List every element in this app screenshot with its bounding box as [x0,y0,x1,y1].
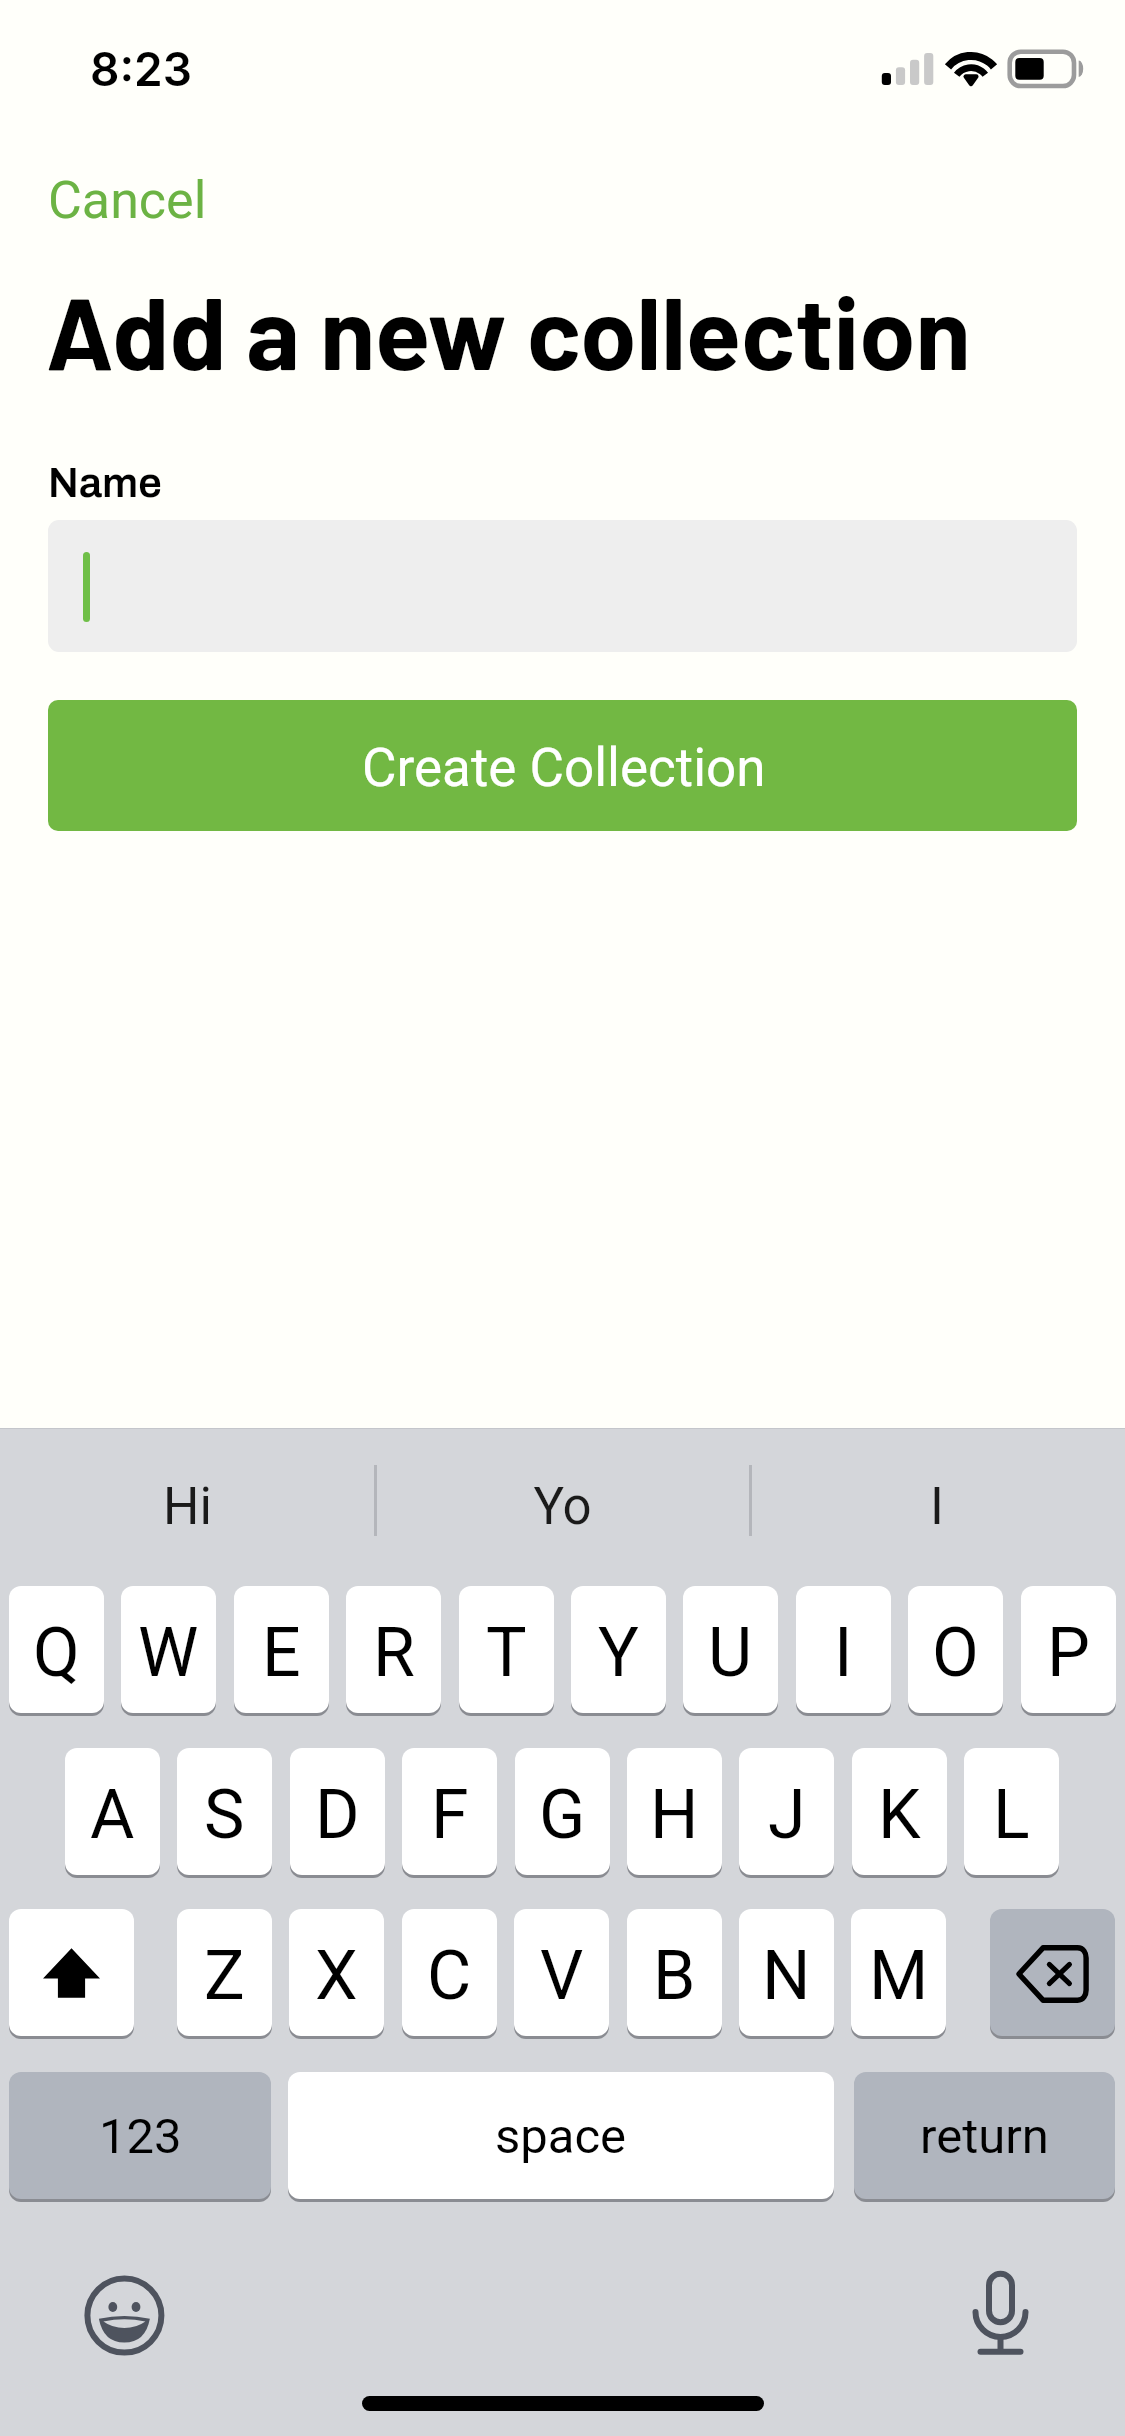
button[interactable]: J [739,1748,834,1875]
staticText: P [1047,1613,1090,1693]
button[interactable]: L [964,1748,1059,1875]
button[interactable]: space [288,2072,834,2199]
button[interactable]: G [515,1748,610,1875]
button[interactable]: Q [9,1586,104,1713]
staticText: I [930,1477,944,1537]
staticText: A [90,1775,135,1855]
staticText: L [993,1775,1030,1855]
staticText: J [768,1775,806,1855]
staticText: R [373,1613,415,1693]
button[interactable]: M [851,1909,946,2036]
staticText: Y [598,1613,639,1693]
button[interactable]: V [514,1909,609,2036]
button[interactable]: R [346,1586,441,1713]
button[interactable]: Shift [9,1909,134,2036]
button[interactable]: S [177,1748,272,1875]
button[interactable]: A [65,1748,160,1875]
button[interactable]: I [796,1586,891,1713]
button[interactable]: Voice input [940,2250,1060,2370]
staticText: K [878,1775,921,1855]
staticText: E [262,1613,301,1693]
staticText: Z [204,1936,245,2016]
button[interactable]: B [627,1909,722,2036]
staticText: Name [48,460,162,506]
staticText: W [138,1613,199,1693]
button[interactable]: E [234,1586,329,1713]
staticText: F [431,1775,469,1855]
button[interactable]: Backspace [990,1909,1115,2036]
button[interactable]: O [908,1586,1003,1713]
staticText: Create Collection [362,737,766,799]
staticText: 123 [99,2108,182,2165]
staticText: Yo [533,1477,592,1537]
staticText: G [539,1775,586,1855]
staticText: T [486,1613,527,1693]
staticText: M [869,1936,929,2016]
button[interactable]: I [807,1454,1067,1559]
staticText: B [653,1936,696,2016]
staticText: U [708,1613,753,1693]
staticText: Add a new collection [46,269,971,390]
button[interactable]: F [402,1748,497,1875]
staticText: return [920,2108,1049,2165]
button[interactable]: X [289,1909,384,2036]
staticText: V [540,1936,584,2016]
button[interactable]: N [739,1909,834,2036]
button[interactable]: D [290,1748,385,1875]
button[interactable]: Emoji keyboard [64,2256,184,2376]
staticText: N [762,1936,811,2016]
button[interactable]: Create Collection [48,700,1077,831]
staticText: Hi [163,1477,212,1537]
button[interactable]: Cancel [37,162,218,239]
button[interactable]: Hi [57,1454,317,1559]
staticText: Q [33,1613,80,1693]
button[interactable]: Yo [432,1454,692,1559]
button[interactable]: K [852,1748,947,1875]
staticText: Cancel [48,170,207,231]
button[interactable]: C [402,1909,497,2036]
button[interactable]: return [854,2072,1115,2199]
button[interactable]: U [683,1586,778,1713]
staticText: space [495,2108,627,2165]
staticText: O [932,1613,979,1693]
staticText: S [204,1775,245,1855]
staticText: X [315,1936,358,2016]
button[interactable]: Y [571,1586,666,1713]
button[interactable]: Z [177,1909,272,2036]
button[interactable]: W [121,1586,216,1713]
staticText: D [315,1775,360,1855]
staticText: I [834,1613,853,1693]
button[interactable] [48,520,1077,652]
button[interactable]: 123 [9,2072,271,2199]
button[interactable]: P [1021,1586,1116,1713]
staticText: H [650,1775,699,1855]
staticText: 8:23 [90,41,193,97]
staticText: C [427,1936,472,2016]
button[interactable]: H [627,1748,722,1875]
button[interactable]: T [459,1586,554,1713]
